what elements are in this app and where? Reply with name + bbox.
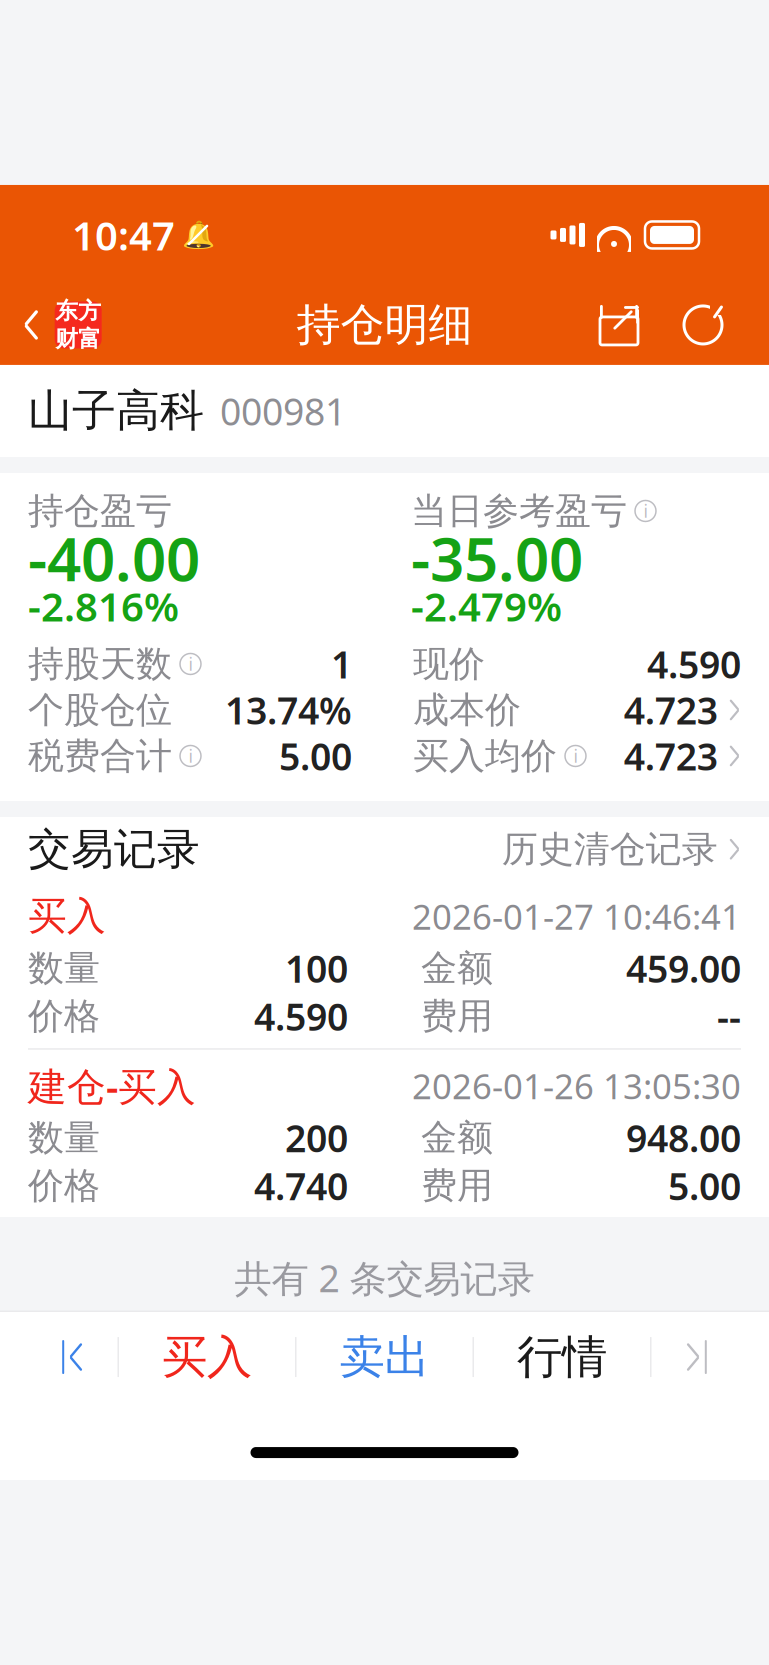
staticText: 买入 — [162, 1329, 252, 1385]
staticText: 10:47 — [72, 208, 175, 261]
staticText: 东方 — [55, 297, 101, 325]
staticText: 税费合计 — [28, 734, 172, 778]
staticText: 000981 — [220, 386, 346, 436]
staticText: 行情 — [517, 1329, 607, 1385]
staticText: -40.00 — [28, 518, 200, 598]
staticText: 4.723 — [624, 731, 718, 781]
staticText: 🔔 — [181, 220, 214, 250]
staticText: i — [188, 744, 192, 767]
staticText: -2.479% — [411, 579, 562, 632]
staticText: i — [643, 499, 647, 522]
staticText: 4.723 — [624, 685, 718, 735]
staticText: 1 — [331, 639, 352, 689]
staticText: 5.00 — [279, 731, 352, 781]
staticText: 交易记录 — [28, 823, 200, 875]
staticText: 金额 — [421, 946, 493, 990]
button[interactable]: 卖出 — [296, 1312, 472, 1402]
staticText: 2026-01-26 13:05:30 — [412, 1063, 741, 1109]
staticText: 948.00 — [626, 1113, 741, 1162]
staticText: 459.00 — [626, 943, 741, 993]
staticText: 5.00 — [668, 1161, 741, 1210]
staticText: 4.590 — [647, 639, 741, 689]
staticText: 2026-01-27 10:46:41 — [412, 893, 741, 939]
staticText: 持仓明细 — [296, 298, 472, 352]
button[interactable]: First — [29, 1312, 117, 1402]
button[interactable]: 买入均价 — [413, 733, 741, 779]
staticText: 13.74% — [225, 685, 352, 735]
staticText: -- — [717, 991, 741, 1041]
staticText: 现价 — [413, 642, 485, 686]
staticText: i — [188, 652, 192, 675]
staticText: 4.740 — [254, 1161, 348, 1210]
staticText: 卖出 — [339, 1329, 429, 1385]
staticText: i — [573, 744, 577, 767]
staticText: 费用 — [421, 994, 493, 1038]
staticText: 个股仓位 — [28, 688, 172, 732]
staticText: 200 — [285, 1113, 348, 1162]
staticText: 数量 — [28, 1116, 100, 1160]
button[interactable]: Share — [597, 302, 641, 348]
staticText: 共有 2 条交易记录 — [234, 1253, 534, 1303]
button[interactable]: Back to 东方财富 — [0, 291, 102, 358]
button[interactable]: 成本价 — [413, 687, 741, 733]
staticText: 山子高科 — [28, 384, 204, 438]
staticText: 100 — [285, 943, 348, 993]
staticText: 建仓-买入 — [28, 1060, 196, 1111]
staticText: 金额 — [421, 1116, 493, 1160]
staticText: 数量 — [28, 946, 100, 990]
staticText: 历史清仓记录 — [502, 827, 718, 871]
staticText: -2.816% — [28, 579, 179, 632]
staticText: -35.00 — [411, 518, 583, 598]
button[interactable]: 行情 — [474, 1312, 650, 1402]
button[interactable]: Refresh — [681, 302, 725, 348]
staticText: 价格 — [28, 1164, 100, 1208]
staticText: 费用 — [421, 1164, 493, 1208]
staticText: 价格 — [28, 994, 100, 1038]
button[interactable]: 买入 — [119, 1312, 295, 1402]
staticText: 持仓盈亏 — [28, 489, 172, 533]
staticText: 财富 — [55, 325, 101, 353]
button[interactable]: Last — [651, 1312, 739, 1402]
staticText: 成本价 — [413, 688, 521, 732]
staticText: 持股天数 — [28, 642, 172, 686]
staticText: 买入均价 — [413, 734, 557, 778]
staticText: 当日参考盈亏 — [411, 489, 627, 533]
staticText: 买入 — [28, 892, 106, 940]
staticText: 4.590 — [254, 991, 348, 1041]
button[interactable]: 历史清仓记录 — [502, 817, 741, 881]
